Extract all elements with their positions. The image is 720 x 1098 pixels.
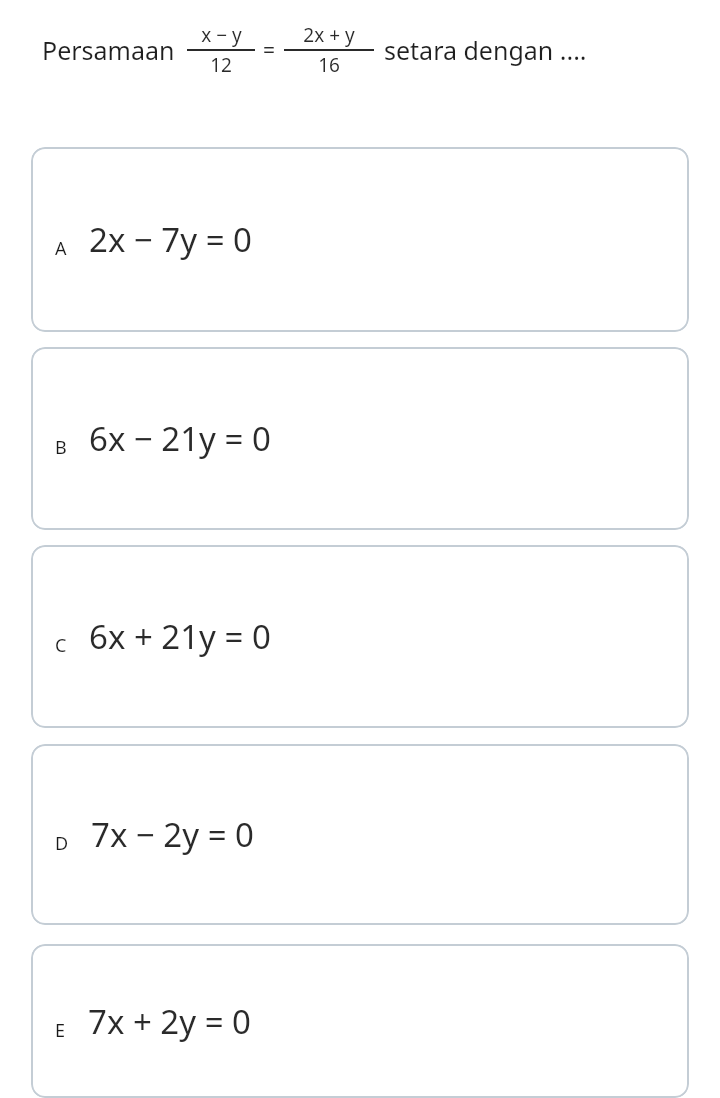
staticText: 7x − 2y = 0 <box>91 812 254 857</box>
button[interactable]: E <box>31 944 689 1098</box>
button[interactable]: D <box>31 744 689 925</box>
button[interactable]: C <box>31 545 689 728</box>
staticText: 2x + y <box>303 22 355 48</box>
staticText: 7x + 2y = 0 <box>88 999 251 1044</box>
staticText: C <box>55 633 67 658</box>
staticText: B <box>55 435 67 460</box>
staticText: Persamaan <box>42 33 175 67</box>
staticText: 16 <box>318 52 340 78</box>
staticText: 6x + 21y = 0 <box>89 614 271 659</box>
staticText: setara dengan .... <box>384 33 587 67</box>
staticText: E <box>55 1018 66 1043</box>
staticText: D <box>55 831 69 856</box>
button[interactable]: B <box>31 347 689 530</box>
staticText: 12 <box>210 52 232 78</box>
staticText: 6x − 21y = 0 <box>89 416 271 461</box>
staticText: A <box>55 236 67 261</box>
staticText: = <box>263 36 276 65</box>
staticText: 2x − 7y = 0 <box>89 217 252 262</box>
button[interactable]: A <box>31 147 689 332</box>
staticText: x − y <box>201 22 242 48</box>
